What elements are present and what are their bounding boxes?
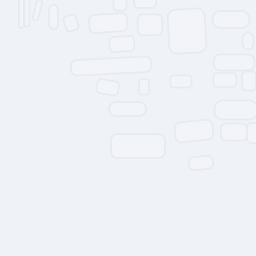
button[interactable]: Card [175,121,213,141]
button[interactable]: Bar [71,58,151,74]
button[interactable]: Row [214,100,256,119]
button[interactable]: Panel [168,9,205,53]
button[interactable]: Row [213,54,254,70]
button[interactable]: Chip [109,102,146,116]
button[interactable]: Continue [111,134,165,158]
button[interactable]: Tile [138,14,162,35]
button[interactable]: Card [89,14,127,32]
button[interactable]: Pill [212,11,249,28]
